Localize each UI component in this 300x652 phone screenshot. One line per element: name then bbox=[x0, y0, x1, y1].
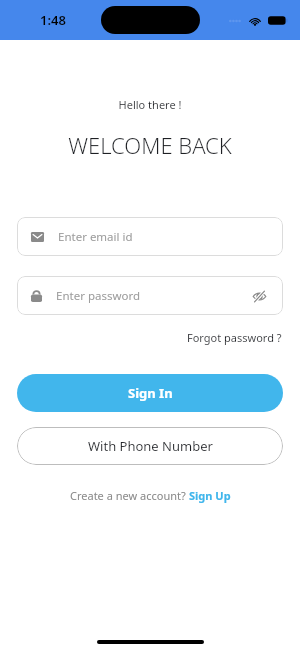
staticText: Forgot password ? bbox=[187, 330, 282, 345]
button[interactable]: Sign Up bbox=[189, 488, 231, 503]
staticText: WELCOME BACK bbox=[0, 130, 300, 160]
button[interactable]: Show password bbox=[249, 286, 269, 306]
staticText: 1:48 bbox=[40, 11, 66, 29]
staticText: Hello there ! bbox=[0, 97, 300, 112]
button[interactable]: With Phone Number bbox=[17, 427, 283, 465]
staticText: Sign Up bbox=[189, 488, 231, 503]
staticText: Create a new account? bbox=[70, 488, 189, 503]
staticText: With Phone Number bbox=[88, 437, 213, 455]
button[interactable]: Sign In bbox=[17, 374, 283, 412]
button[interactable]: Forgot password ? bbox=[169, 327, 300, 348]
staticText: Enter email id bbox=[58, 229, 269, 245]
button[interactable]: Enter password bbox=[17, 276, 283, 315]
staticText: Sign In bbox=[128, 384, 173, 402]
staticText: Enter password bbox=[56, 288, 249, 304]
button[interactable]: Enter email id bbox=[17, 217, 283, 256]
